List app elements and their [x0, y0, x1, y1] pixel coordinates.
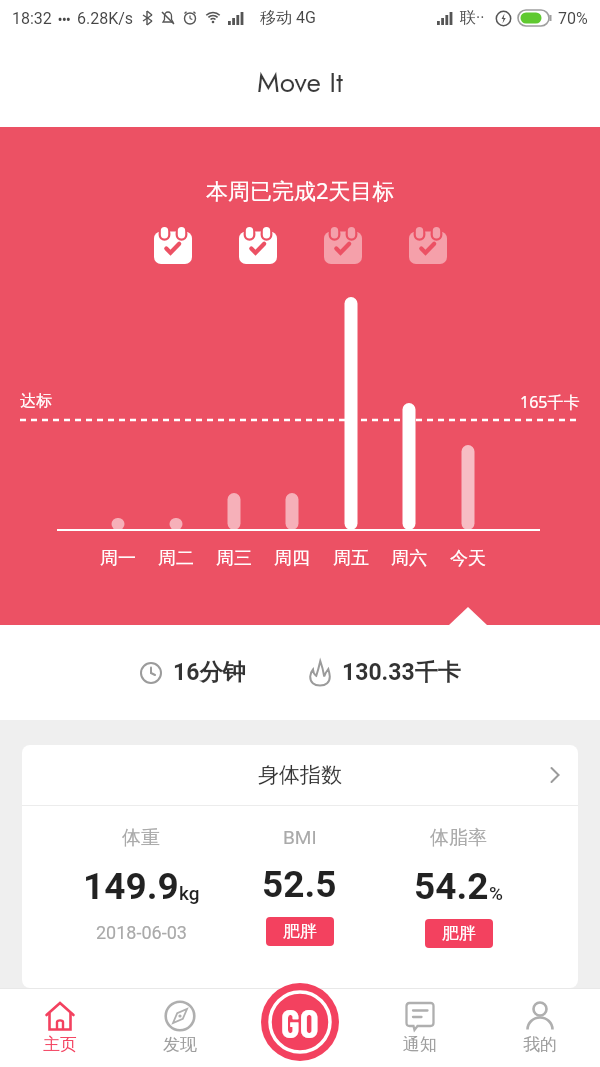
staticText: 体重: [122, 826, 160, 850]
staticText: 身体指数: [258, 762, 342, 788]
staticText: 周五: [333, 547, 369, 570]
staticText: 发现: [163, 1034, 197, 1055]
button[interactable]: GO: [261, 983, 339, 1061]
staticText: 165千卡: [520, 391, 580, 413]
staticText: 6.28K/s: [77, 9, 134, 28]
staticText: 通知: [403, 1034, 437, 1055]
staticText: 移动 4G: [260, 8, 316, 28]
staticText: 2018-06-03: [96, 922, 187, 943]
staticText: 肥胖: [442, 923, 476, 944]
staticText: kg: [179, 882, 200, 904]
staticText: 周一: [100, 547, 136, 570]
staticText: 70%: [558, 9, 588, 28]
staticText: 达标: [20, 391, 52, 411]
staticText: Move It: [257, 62, 343, 102]
staticText: 我的: [523, 1034, 557, 1055]
staticText: %: [489, 882, 503, 904]
staticText: 149.9: [83, 865, 179, 908]
staticText: 本周已完成2天目标: [206, 175, 395, 205]
button[interactable]: 我的: [480, 988, 600, 1067]
staticText: 周三: [216, 547, 252, 570]
staticText: 周二: [158, 547, 194, 570]
staticText: 周六: [391, 547, 427, 570]
button[interactable]: 发现: [120, 988, 240, 1067]
staticText: 联··: [460, 8, 485, 28]
staticText: BMI: [283, 826, 317, 848]
staticText: 今天: [450, 547, 486, 570]
staticText: 18:32: [12, 9, 52, 28]
button[interactable]: 身体指数: [22, 745, 578, 805]
staticText: 54.2: [414, 865, 489, 908]
staticText: 肥胖: [283, 921, 317, 942]
staticText: 16分钟: [173, 658, 246, 687]
staticText: 130.33千卡: [342, 658, 461, 687]
staticText: 周四: [274, 547, 310, 570]
staticText: •••: [58, 11, 71, 26]
button[interactable]: 通知: [360, 988, 480, 1067]
staticText: 体脂率: [430, 826, 487, 850]
staticText: GO: [281, 998, 319, 1046]
button[interactable]: 主页: [0, 988, 120, 1067]
staticText: 主页: [43, 1034, 77, 1055]
staticText: 52.5: [262, 863, 337, 906]
